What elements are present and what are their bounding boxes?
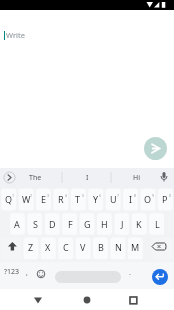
button[interactable]: H xyxy=(96,218,112,230)
button[interactable]: Write xyxy=(6,29,36,41)
staticText: I xyxy=(129,193,133,205)
button[interactable] xyxy=(152,269,168,285)
button[interactable] xyxy=(144,137,167,160)
staticText: U xyxy=(110,193,117,205)
staticText: T xyxy=(75,193,81,205)
button[interactable]: 9 xyxy=(150,192,157,198)
staticText: E xyxy=(41,193,47,205)
button[interactable]: L xyxy=(149,218,165,230)
button[interactable]: . xyxy=(126,268,134,278)
button[interactable] xyxy=(30,292,46,308)
staticText: M xyxy=(131,241,140,253)
staticText: The xyxy=(29,173,42,183)
button[interactable]: J xyxy=(114,218,130,230)
staticText: G xyxy=(84,218,91,230)
button[interactable]: 2 xyxy=(28,192,35,198)
button[interactable]: S xyxy=(27,218,43,230)
staticText: , xyxy=(26,268,28,278)
button[interactable]: I xyxy=(123,193,139,205)
staticText: X xyxy=(45,241,51,253)
button[interactable]: Hi xyxy=(126,172,146,184)
button[interactable]: C xyxy=(58,241,74,253)
button[interactable]: M xyxy=(127,241,143,253)
button[interactable]: V xyxy=(75,241,91,253)
button[interactable]: ?123 xyxy=(2,266,22,277)
button[interactable]: X xyxy=(40,241,56,253)
button[interactable]: P xyxy=(157,193,173,205)
staticText: C xyxy=(63,241,69,253)
button[interactable]: 3 xyxy=(45,192,52,198)
button[interactable]: B xyxy=(93,241,109,253)
staticText: ?123 xyxy=(4,267,20,277)
staticText: B xyxy=(98,241,104,253)
button[interactable]: , xyxy=(23,268,31,278)
button[interactable]: 6 xyxy=(97,192,104,198)
staticText: 6 xyxy=(99,193,102,198)
staticText: H xyxy=(101,218,108,230)
staticText: S xyxy=(33,218,38,230)
staticText: 2 xyxy=(30,193,33,198)
staticText: Q xyxy=(5,193,13,205)
staticText: 1 xyxy=(12,193,15,198)
button[interactable]: 4 xyxy=(63,192,70,198)
staticText: 8 xyxy=(134,193,137,198)
button[interactable]: R xyxy=(53,193,69,205)
button[interactable]: Y xyxy=(88,193,104,205)
button[interactable]: T xyxy=(70,193,86,205)
button[interactable]: F xyxy=(62,218,78,230)
staticText: D xyxy=(49,218,56,230)
button[interactable]: 1 xyxy=(10,192,17,198)
staticText: I xyxy=(86,173,89,183)
button[interactable]: U xyxy=(105,193,121,205)
staticText: A xyxy=(14,218,20,230)
staticText: R xyxy=(58,193,64,205)
staticText: W xyxy=(22,193,31,205)
staticText: . xyxy=(129,268,131,278)
button[interactable]: 8 xyxy=(132,192,139,198)
staticText: 9 xyxy=(152,193,155,198)
button[interactable] xyxy=(79,292,95,308)
button[interactable]: Z xyxy=(23,241,39,253)
button[interactable]: E xyxy=(36,193,52,205)
staticText: Z xyxy=(28,241,34,253)
button[interactable]: A xyxy=(9,218,25,230)
button[interactable]: I xyxy=(77,172,97,184)
staticText: L xyxy=(155,218,160,230)
button[interactable]: 5 xyxy=(80,192,87,198)
staticText: F xyxy=(68,218,73,230)
button[interactable]: Q xyxy=(1,193,17,205)
button[interactable]: O xyxy=(140,193,156,205)
staticText: 4 xyxy=(65,193,68,198)
staticText: 3 xyxy=(47,193,50,198)
staticText: 7 xyxy=(117,193,120,198)
button[interactable]: 0 xyxy=(167,192,174,198)
button[interactable] xyxy=(55,271,121,283)
staticText: Y xyxy=(93,193,99,205)
staticText: K xyxy=(136,218,142,230)
staticText: Hi xyxy=(133,173,140,183)
button[interactable]: D xyxy=(44,218,60,230)
staticText: V xyxy=(80,241,86,253)
button[interactable]: N xyxy=(110,241,126,253)
button[interactable]: 7 xyxy=(115,192,122,198)
staticText: P xyxy=(162,193,168,205)
button[interactable]: G xyxy=(79,218,95,230)
staticText: 0 xyxy=(169,193,172,198)
button[interactable]: K xyxy=(131,218,147,230)
button[interactable] xyxy=(125,292,141,308)
staticText: O xyxy=(144,193,152,205)
staticText: Write xyxy=(6,30,25,40)
staticText: J xyxy=(121,218,124,230)
button[interactable]: W xyxy=(18,193,34,205)
staticText: N xyxy=(115,241,122,253)
staticText: 5 xyxy=(82,193,85,198)
button[interactable]: The xyxy=(22,172,48,184)
